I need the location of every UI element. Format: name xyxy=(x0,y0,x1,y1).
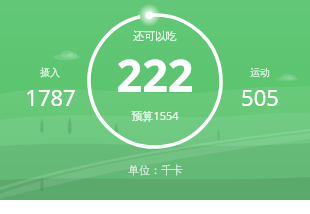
staticText: 505 xyxy=(241,82,279,112)
staticText: 222 xyxy=(116,44,194,105)
button[interactable]: 单位：千卡 xyxy=(128,163,183,177)
staticText: 1787 xyxy=(25,82,76,112)
staticText: 运动 xyxy=(250,66,270,79)
button[interactable]: 运动 xyxy=(224,66,296,112)
button[interactable]: 摄入 xyxy=(14,66,86,112)
staticText: 单位：千卡 xyxy=(128,163,183,177)
staticText: 预算1554 xyxy=(131,108,179,123)
staticText: 还可以吃 xyxy=(133,29,177,43)
button[interactable]: 还可以吃 xyxy=(90,29,220,123)
staticText: 摄入 xyxy=(40,66,60,79)
